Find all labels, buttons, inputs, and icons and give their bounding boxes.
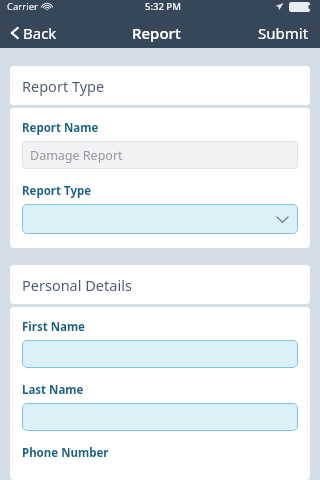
- staticText: Personal Details: [22, 275, 132, 295]
- staticText: Report Name: [22, 120, 99, 136]
- staticText: Phone Number: [22, 445, 109, 461]
- staticText: Carrier: [7, 0, 38, 13]
- staticText: Report: [132, 23, 181, 43]
- staticText: First Name: [22, 319, 85, 335]
- staticText: Damage Report: [30, 147, 123, 164]
- button[interactable]: Report Type: [10, 66, 310, 105]
- staticText: Back: [23, 23, 57, 43]
- button[interactable]: Back: [8, 20, 59, 46]
- staticText: Last Name: [22, 382, 84, 398]
- staticText: Report Type: [22, 76, 105, 96]
- staticText: Report Type: [22, 183, 92, 199]
- button[interactable]: Damage Report: [22, 141, 298, 169]
- staticText: Submit: [258, 23, 309, 43]
- button[interactable]: Select report type: [22, 204, 298, 234]
- button[interactable]: Submit: [255, 20, 312, 46]
- button[interactable]: [22, 403, 298, 431]
- staticText: 5:32 PM: [145, 0, 181, 13]
- button[interactable]: [22, 340, 298, 368]
- button[interactable]: Personal Details: [10, 265, 310, 304]
